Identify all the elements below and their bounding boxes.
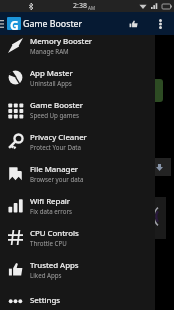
staticText: Throttle CPU [30, 239, 67, 247]
staticText: Liked Apps [30, 271, 62, 279]
staticText: G [10, 17, 19, 30]
button[interactable]: App Master [0, 67, 155, 99]
staticText: Trusted Apps [30, 260, 79, 271]
staticText: Uninstall Apps [30, 79, 72, 87]
staticText: Game Booster [23, 18, 83, 30]
staticText: File Manager [30, 164, 79, 175]
button[interactable]: Rate app [124, 13, 142, 35]
button[interactable]: Game Booster [0, 99, 155, 131]
staticText: Browser your data [30, 175, 84, 183]
staticText: 2:38 [73, 1, 87, 11]
button[interactable] [112, 79, 163, 102]
button[interactable]: File Manager [0, 163, 155, 195]
button[interactable]: Trusted Apps [0, 259, 155, 291]
staticText: Protect Your Data [30, 143, 82, 151]
staticText: AM [88, 5, 95, 11]
button[interactable]: Wifi Repair [0, 195, 155, 227]
staticText: Fix data errors [30, 207, 73, 215]
button[interactable]: More options [153, 13, 168, 35]
staticText: Wifi Repair [30, 196, 71, 207]
staticText: Settings [30, 295, 61, 306]
staticText: App Master [30, 68, 73, 79]
button[interactable]: CPU Controls [0, 227, 155, 259]
staticText: Manage RAM [30, 47, 69, 55]
button[interactable]: Privacy Cleaner [0, 131, 155, 163]
button[interactable]: Open navigation drawer [0, 13, 6, 35]
button[interactable]: Download [120, 158, 171, 176]
button[interactable]: Memory Booster [0, 35, 155, 67]
staticText: CPU Controls [30, 228, 79, 239]
staticText: Game Booster [30, 100, 84, 111]
staticText: Memory Booster [30, 36, 93, 47]
staticText: Privacy Cleaner [30, 132, 87, 143]
button[interactable]: Settings [0, 291, 155, 310]
staticText: Speed Up games [30, 111, 80, 119]
